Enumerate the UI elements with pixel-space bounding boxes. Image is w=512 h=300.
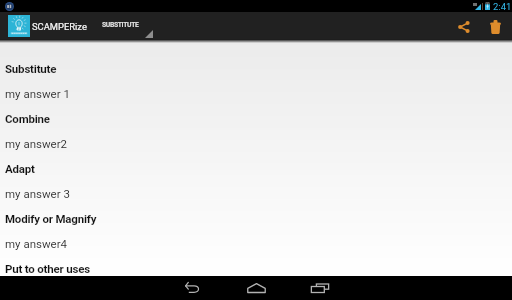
button[interactable]: Adapt — [0, 156, 512, 181]
button[interactable]: Back — [160, 276, 224, 300]
staticText: 2:41 — [493, 1, 512, 12]
staticText: Substitute — [5, 62, 57, 75]
staticText: Put to other uses — [5, 262, 90, 275]
staticText: SUBSTITUTE — [102, 21, 139, 29]
button[interactable]: App icon — [8, 15, 30, 37]
staticText: Adapt — [5, 162, 35, 175]
button[interactable]: Share — [446, 12, 482, 39]
button[interactable]: Delete — [479, 12, 512, 39]
button[interactable]: my answer 1 — [0, 81, 512, 106]
staticText: Combine — [5, 112, 50, 125]
staticText: my answer4 — [5, 237, 68, 250]
button[interactable]: Put to other uses — [0, 256, 512, 276]
button[interactable]: Recent apps — [288, 276, 352, 300]
staticText: Modify or Magnify — [5, 212, 97, 225]
button[interactable]: Combine — [0, 106, 512, 131]
staticText: SCAMPERize — [32, 21, 87, 32]
button[interactable]: Substitute — [0, 56, 512, 81]
button[interactable]: my answer4 — [0, 231, 512, 256]
button[interactable]: SUBSTITUTE — [98, 12, 156, 39]
button[interactable]: Modify or Magnify — [0, 206, 512, 231]
staticText: my answer2 — [5, 137, 68, 150]
button[interactable]: Home — [224, 276, 288, 300]
staticText: my answer 1 — [5, 87, 70, 100]
staticText: my answer 3 — [5, 187, 70, 200]
button[interactable]: my answer 3 — [0, 181, 512, 206]
button[interactable]: my answer2 — [0, 131, 512, 156]
